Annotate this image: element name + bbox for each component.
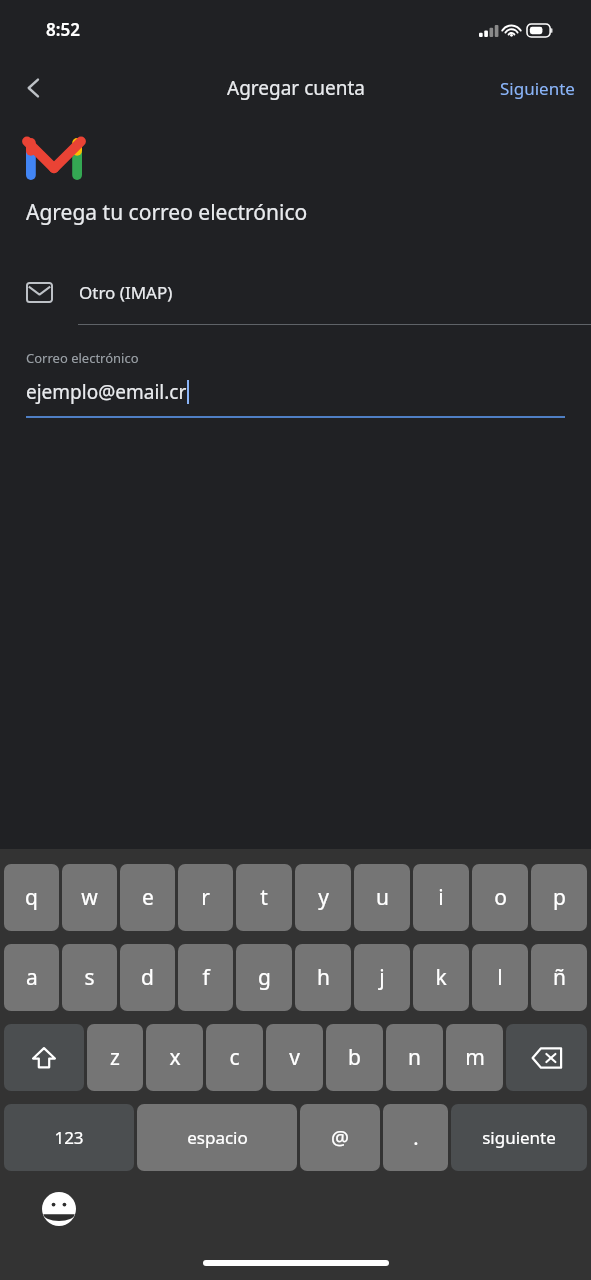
staticText: Agregar cuenta: [227, 75, 365, 101]
staticText: a: [26, 963, 38, 992]
button[interactable]: r: [178, 864, 233, 931]
staticText: k: [435, 963, 447, 992]
button[interactable]: q: [4, 864, 59, 931]
staticText: e: [142, 883, 154, 912]
staticText: Correo electrónico: [26, 349, 139, 367]
staticText: f: [202, 963, 210, 992]
staticText: ñ: [553, 963, 566, 992]
staticText: espacio: [187, 1126, 248, 1149]
staticText: .: [413, 1124, 419, 1151]
button[interactable]: Otro (IMAP): [0, 275, 591, 310]
staticText: @: [331, 1124, 349, 1151]
button[interactable]: d: [120, 944, 175, 1011]
staticText: u: [376, 883, 389, 912]
staticText: t: [260, 883, 268, 912]
button[interactable]: @: [300, 1104, 380, 1171]
button[interactable]: f: [178, 944, 233, 1011]
button[interactable]: v: [266, 1024, 323, 1091]
staticText: n: [408, 1043, 421, 1072]
staticText: s: [84, 963, 95, 992]
button[interactable]: e: [120, 864, 175, 931]
staticText: j: [379, 963, 385, 992]
button[interactable]: g: [236, 944, 292, 1011]
button[interactable]: espacio: [137, 1104, 297, 1171]
button[interactable]: t: [236, 864, 292, 931]
staticText: p: [553, 883, 566, 912]
staticText: siguiente: [482, 1126, 556, 1149]
staticText: z: [110, 1043, 120, 1072]
button[interactable]: l: [472, 944, 528, 1011]
button[interactable]: y: [295, 864, 351, 931]
staticText: Otro (IMAP): [79, 281, 173, 304]
button[interactable]: o: [472, 864, 528, 931]
button[interactable]: Emoji: [40, 1190, 78, 1228]
button[interactable]: .: [383, 1104, 448, 1171]
button[interactable]: c: [206, 1024, 263, 1091]
staticText: q: [25, 883, 38, 912]
staticText: 8:52: [46, 18, 80, 41]
button[interactable]: j: [354, 944, 410, 1011]
staticText: i: [438, 883, 444, 912]
staticText: r: [201, 883, 210, 912]
button[interactable]: z: [87, 1024, 143, 1091]
button[interactable]: Atrás: [8, 62, 60, 114]
staticText: h: [317, 963, 330, 992]
staticText: v: [289, 1043, 300, 1072]
button[interactable]: Siguiente: [484, 67, 591, 110]
button[interactable]: u: [354, 864, 410, 931]
button[interactable]: Borrar: [506, 1024, 587, 1091]
staticText: x: [169, 1043, 181, 1072]
button[interactable]: siguiente: [451, 1104, 587, 1171]
staticText: d: [141, 963, 154, 992]
staticText: y: [318, 883, 329, 912]
staticText: b: [348, 1043, 361, 1072]
staticText: 123: [54, 1126, 84, 1149]
staticText: c: [229, 1043, 240, 1072]
staticText: Siguiente: [500, 77, 575, 100]
staticText: m: [465, 1043, 485, 1072]
button[interactable]: b: [326, 1024, 383, 1091]
staticText: w: [81, 883, 98, 912]
button[interactable]: a: [4, 944, 59, 1011]
button[interactable]: k: [413, 944, 469, 1011]
button[interactable]: h: [295, 944, 351, 1011]
button[interactable]: ñ: [531, 944, 587, 1011]
button[interactable]: s: [62, 944, 117, 1011]
button[interactable]: Mayúsculas: [4, 1024, 84, 1091]
staticText: g: [258, 963, 271, 992]
button[interactable]: 123: [4, 1104, 134, 1171]
staticText: l: [497, 963, 503, 992]
button[interactable]: n: [386, 1024, 443, 1091]
button[interactable]: w: [62, 864, 117, 931]
staticText: ejemplo@email.cr: [26, 379, 187, 405]
button[interactable]: x: [146, 1024, 203, 1091]
button[interactable]: m: [446, 1024, 503, 1091]
staticText: Agrega tu correo electrónico: [26, 198, 308, 227]
button[interactable]: p: [531, 864, 587, 931]
button[interactable]: i: [413, 864, 469, 931]
staticText: o: [494, 883, 507, 912]
